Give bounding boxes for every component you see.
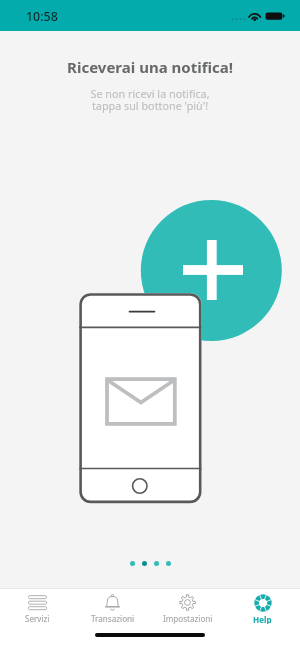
button[interactable]: Help [225, 589, 300, 624]
staticText: Servizi [25, 613, 50, 624]
button[interactable]: Aggiungi [141, 200, 282, 341]
staticText: 10:58 [26, 8, 58, 25]
button[interactable]: Transazioni [75, 589, 150, 624]
staticText: Se non ricevi la notifica, tappa sul bot… [0, 86, 300, 113]
button[interactable]: Impostazioni [150, 589, 225, 624]
button[interactable]: Servizi [0, 589, 75, 624]
staticText: Transazioni [91, 613, 135, 624]
staticText: Riceverai una notifica! [0, 57, 300, 77]
staticText: Impostazioni [163, 613, 213, 624]
staticText: Help [253, 614, 272, 624]
